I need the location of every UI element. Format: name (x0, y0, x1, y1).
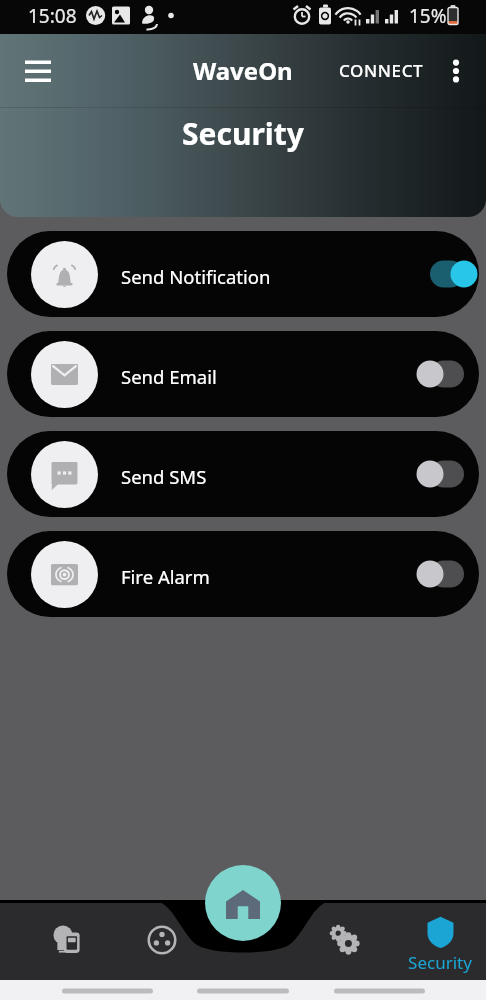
button[interactable]: Send Email (7, 331, 479, 417)
staticText: Security (182, 113, 304, 154)
button[interactable]: Menu (12, 45, 64, 97)
button[interactable]: Outlets (119, 900, 205, 980)
button[interactable]: CONNECT (329, 47, 434, 94)
staticText: Security (408, 951, 472, 974)
button[interactable]: More options (434, 49, 478, 93)
button[interactable]: Toggle Fire Alarm (409, 546, 471, 602)
staticText: Send Notification (121, 264, 271, 289)
button[interactable]: Devices (22, 900, 108, 980)
button[interactable]: Security (397, 900, 483, 980)
staticText: CONNECT (339, 59, 424, 82)
button[interactable]: Toggle Send SMS (409, 446, 471, 502)
button[interactable]: Toggle Send Email (409, 346, 471, 402)
button[interactable]: Toggle Send Notification (409, 246, 471, 302)
button[interactable]: Home (205, 865, 281, 941)
staticText: 15% (409, 3, 447, 29)
staticText: 15:08 (28, 3, 77, 29)
staticText: Send SMS (121, 464, 207, 489)
staticText: Send Email (121, 364, 217, 389)
staticText: WaveOn (193, 54, 293, 87)
button[interactable]: Settings (302, 900, 388, 980)
button[interactable]: Fire Alarm (7, 531, 479, 617)
button[interactable]: Send SMS (7, 431, 479, 517)
button[interactable]: Send Notification (7, 231, 479, 317)
staticText: Fire Alarm (121, 564, 210, 589)
